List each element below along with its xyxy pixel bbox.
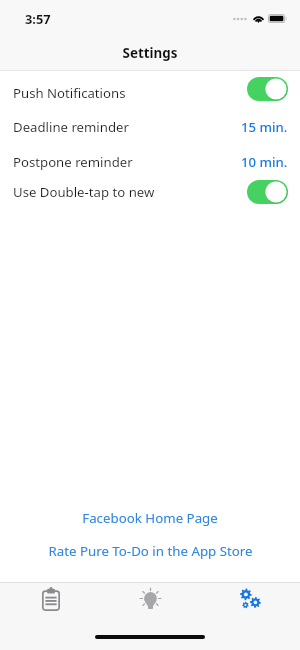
staticText: 10 min. (241, 153, 288, 171)
staticText: Push Notifications (13, 84, 126, 102)
button[interactable]: Postpone reminder (0, 145, 300, 178)
staticText: Deadline reminder (13, 118, 129, 136)
button[interactable]: Toggle (247, 180, 288, 204)
button[interactable]: Tasks (0, 583, 100, 617)
staticText: Settings (0, 44, 300, 62)
staticText: Postpone reminder (13, 153, 133, 171)
button[interactable]: Facebook Home Page (0, 502, 300, 534)
staticText: Facebook Home Page (82, 509, 218, 527)
button[interactable]: Settings (200, 583, 300, 617)
button[interactable]: Deadline reminder (0, 110, 300, 144)
staticText: 15 min. (241, 118, 288, 136)
button[interactable]: Push Notifications (0, 76, 300, 110)
button[interactable]: Ideas (100, 583, 200, 617)
button[interactable]: Use Double-tap to new (0, 177, 300, 206)
button[interactable]: Toggle (247, 77, 288, 101)
staticText: Use Double-tap to new (13, 183, 155, 201)
button[interactable]: Rate Pure To-Do in the App Store (0, 535, 300, 567)
staticText: Rate Pure To-Do in the App Store (48, 542, 253, 560)
staticText: 3:57 (25, 10, 51, 27)
